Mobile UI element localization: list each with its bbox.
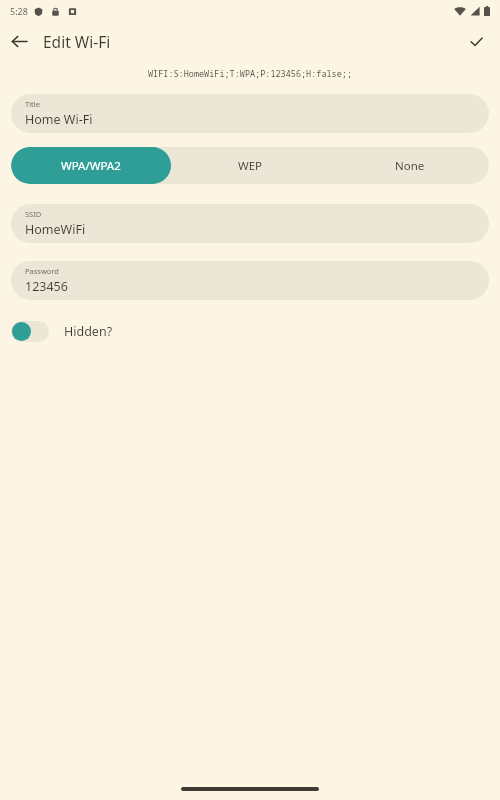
button[interactable]: WPA/WPA2	[11, 147, 171, 184]
staticText: WEP	[238, 158, 263, 174]
staticText: HomeWiFi	[25, 221, 86, 238]
staticText: 5:28	[10, 5, 28, 17]
button[interactable]: SSID	[11, 204, 489, 243]
staticText: WPA/WPA2	[61, 158, 121, 174]
button[interactable]: Password	[11, 261, 489, 300]
button[interactable]: Save	[459, 24, 493, 58]
button[interactable]: None	[330, 147, 489, 184]
staticText: None	[395, 158, 425, 174]
staticText: Title	[25, 99, 40, 109]
staticText: Home Wi-Fi	[25, 111, 93, 128]
button[interactable]: Back	[0, 22, 38, 60]
staticText: SSID	[25, 209, 42, 219]
staticText: Password	[25, 266, 59, 276]
staticText: WIFI:S:HomeWiFi;T:WPA;P:123456;H:false;;	[148, 68, 353, 80]
button[interactable]: WEP	[171, 147, 330, 184]
staticText: Edit Wi-Fi	[43, 31, 111, 52]
button[interactable]: Title	[11, 94, 489, 133]
staticText: Hidden?	[64, 323, 113, 340]
button[interactable]: Hidden?	[11, 316, 489, 346]
staticText: 123456	[25, 278, 68, 295]
